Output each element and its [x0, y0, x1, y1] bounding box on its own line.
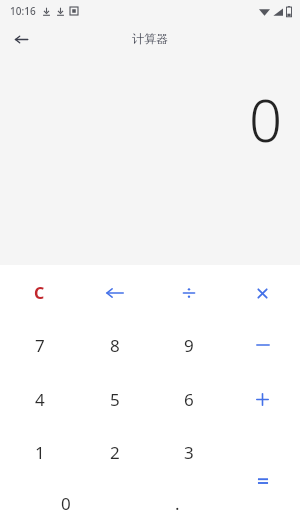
other: Backspace	[77, 279, 152, 307]
button[interactable]: Multiply	[225, 279, 300, 307]
staticText: 2	[110, 441, 120, 464]
button[interactable]: Minus	[225, 331, 300, 359]
other: Minus	[225, 331, 300, 359]
button[interactable]: 8	[77, 331, 152, 359]
staticText: C	[34, 282, 45, 304]
button[interactable]: Plus	[225, 385, 300, 413]
button[interactable]: 5	[77, 385, 152, 413]
staticText: 4	[35, 388, 45, 411]
staticText: 1	[35, 441, 45, 464]
button[interactable]: 4	[2, 385, 77, 413]
staticText: 9	[184, 334, 194, 357]
staticText: 6	[184, 388, 194, 411]
button[interactable]: Back	[8, 26, 34, 52]
button[interactable]: 7	[2, 331, 77, 359]
staticText: 3	[184, 441, 194, 464]
button[interactable]: C	[2, 279, 77, 307]
button[interactable]: 0	[28, 489, 103, 517]
button[interactable]: Divide	[151, 279, 226, 307]
button[interactable]: 3	[151, 438, 226, 466]
button[interactable]: 1	[2, 438, 77, 466]
staticText: 0	[248, 80, 282, 159]
button[interactable]: Backspace	[77, 279, 152, 307]
staticText: 计算器	[132, 31, 168, 46]
button[interactable]: 6	[151, 385, 226, 413]
staticText: 7	[35, 334, 45, 357]
button[interactable]: Equals	[225, 441, 300, 521]
staticText: 8	[110, 334, 120, 357]
staticText: 10:16	[10, 4, 36, 18]
staticText: 0	[61, 492, 71, 515]
button[interactable]: .	[140, 489, 215, 517]
other: Divide	[151, 279, 226, 307]
button[interactable]: 9	[151, 331, 226, 359]
staticText: 5	[110, 388, 120, 411]
other: Plus	[225, 385, 300, 413]
other: Multiply	[225, 279, 300, 307]
button[interactable]: 2	[77, 438, 152, 466]
staticText: .	[175, 492, 180, 515]
